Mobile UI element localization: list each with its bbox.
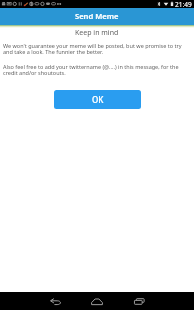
- button[interactable]: Send Meme: [0, 8, 194, 25]
- button[interactable]: OK: [54, 90, 141, 109]
- staticText: We won't guarantee your meme will be pos…: [3, 42, 183, 56]
- button[interactable]: Home: [84, 292, 110, 310]
- staticText: Also feel free to add your twittername (…: [3, 63, 183, 77]
- staticText: OK: [92, 94, 104, 105]
- staticText: Keep in mind: [75, 28, 119, 38]
- staticText: 21:49: [175, 0, 192, 8]
- button[interactable]: Recent apps: [126, 292, 152, 310]
- button[interactable]: Back: [43, 292, 69, 310]
- staticText: Send Meme: [75, 11, 119, 21]
